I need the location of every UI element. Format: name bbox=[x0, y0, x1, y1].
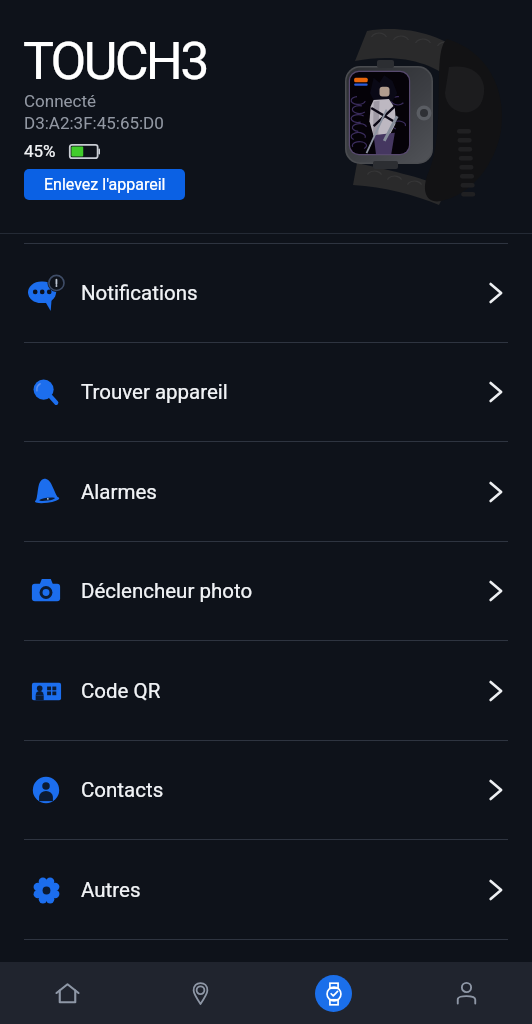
button[interactable]: Autres bbox=[0, 840, 532, 939]
button[interactable]: Contacts bbox=[0, 741, 532, 839]
staticText: Trouver appareil bbox=[81, 380, 228, 404]
button[interactable]: Location bbox=[164, 962, 236, 1024]
button[interactable]: Alarmes bbox=[0, 442, 532, 541]
button[interactable]: Profile bbox=[430, 962, 502, 1024]
staticText: Code QR bbox=[81, 679, 161, 703]
button[interactable]: My device bbox=[297, 962, 369, 1024]
staticText: Déclencheur photo bbox=[81, 579, 253, 603]
button[interactable]: Trouver appareil bbox=[0, 343, 532, 441]
staticText: 45% bbox=[24, 141, 56, 161]
staticText: Alarmes bbox=[81, 480, 157, 504]
staticText: Enlevez l'appareil bbox=[44, 175, 166, 194]
button[interactable]: Déclencheur photo bbox=[0, 542, 532, 640]
staticText: TOUCH3 bbox=[23, 31, 207, 92]
button[interactable]: Home bbox=[31, 962, 103, 1024]
staticText: Autres bbox=[81, 878, 141, 902]
staticText: D3:A2:3F:45:65:D0 bbox=[24, 113, 164, 133]
button[interactable]: Code QR bbox=[0, 641, 532, 740]
staticText: Contacts bbox=[81, 778, 164, 802]
button[interactable]: Notifications bbox=[0, 244, 532, 342]
button[interactable]: Enlevez l'appareil bbox=[24, 169, 185, 200]
staticText: Notifications bbox=[81, 281, 198, 305]
staticText: Connecté bbox=[24, 91, 97, 111]
